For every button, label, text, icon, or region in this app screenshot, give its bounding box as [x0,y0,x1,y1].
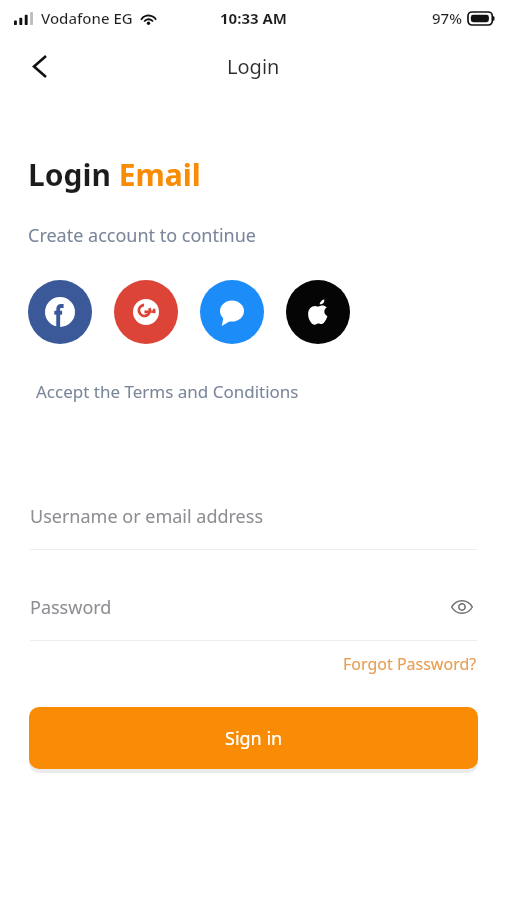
button[interactable]: Forgot Password? [343,653,477,675]
button[interactable]: Sign in with Messenger [200,280,264,344]
button[interactable]: Sign in with Google [114,280,178,344]
button[interactable]: Sign in [29,707,478,769]
staticText: Sign in [225,726,283,751]
staticText: 97% [432,8,462,28]
button[interactable]: Sign in with Facebook [28,280,92,344]
staticText: Login Email [28,154,201,195]
staticText: 10:33 AM [220,8,287,28]
button[interactable]: Accept the Terms and Conditions [36,380,299,403]
button[interactable]: Password [30,590,477,641]
staticText: Accept the Terms and Conditions [36,380,299,403]
staticText: Username or email address [30,504,264,529]
staticText: Vodafone EG [41,8,133,28]
button[interactable]: Show password [447,592,477,622]
staticText: Create account to continue [28,223,256,248]
button[interactable]: Username or email address [30,499,477,550]
button[interactable]: Back [18,44,62,88]
staticText: Login [227,53,280,80]
staticText: Forgot Password? [343,653,477,675]
staticText: Password [30,595,112,620]
button[interactable]: Sign in with Apple [286,280,350,344]
